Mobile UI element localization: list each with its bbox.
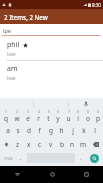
button[interactable]: h <box>56 123 67 137</box>
staticText: c <box>38 140 42 149</box>
button[interactable]: phil <box>0 37 103 60</box>
staticText: l <box>94 126 96 135</box>
staticText: t <box>47 114 50 123</box>
button[interactable]: Voice input <box>69 98 103 109</box>
button[interactable]: . <box>76 153 86 163</box>
staticText: 9 <box>87 110 89 114</box>
staticText: e <box>26 114 30 123</box>
staticText: 8:30 <box>92 2 101 8</box>
button[interactable]: k <box>78 123 89 137</box>
staticText: 5 <box>48 110 50 114</box>
button[interactable]: f <box>34 123 45 137</box>
staticText: b <box>60 140 64 149</box>
staticText: , <box>20 154 22 162</box>
button[interactable]: n <box>67 137 78 151</box>
staticText: g <box>49 126 53 135</box>
button[interactable]: Search <box>90 154 99 163</box>
button[interactable]: Shift <box>0 137 13 151</box>
staticText: z <box>16 140 20 149</box>
staticText: d <box>27 126 31 135</box>
button[interactable]: Close keyboard <box>0 166 35 183</box>
staticText: 8 <box>77 110 79 114</box>
staticText: love <box>7 75 16 81</box>
staticText: o <box>86 114 90 123</box>
button[interactable]: 1 <box>0 109 11 123</box>
button[interactable]: v <box>45 137 56 151</box>
staticText: 2 Items, 2 New <box>4 13 48 21</box>
button[interactable]: 4 <box>33 109 43 123</box>
button[interactable]: 0 <box>93 109 103 123</box>
staticText: h <box>59 126 64 135</box>
staticText: n <box>70 140 75 149</box>
staticText: m <box>80 140 87 149</box>
button[interactable]: a <box>3 123 13 137</box>
staticText: v <box>49 140 53 149</box>
staticText: love <box>7 51 16 57</box>
staticText: x <box>27 140 31 149</box>
staticText: 3 <box>27 110 29 114</box>
button[interactable]: 8 <box>73 109 83 123</box>
button[interactable]: l <box>89 123 100 137</box>
staticText: 0 <box>97 110 99 114</box>
button[interactable]: s <box>13 123 23 137</box>
button[interactable]: 2 Items, 2 New <box>0 9 103 24</box>
button[interactable]: d <box>23 123 34 137</box>
button[interactable]: ?123 <box>0 153 16 163</box>
button[interactable]: 9 <box>83 109 93 123</box>
button[interactable]: 3 <box>22 109 33 123</box>
staticText: 2 <box>16 110 18 114</box>
staticText: j <box>72 126 74 135</box>
staticText: y <box>56 114 60 123</box>
button[interactable]: , <box>16 153 26 163</box>
button[interactable]: b <box>56 137 67 151</box>
staticText: r <box>37 114 40 123</box>
staticText: p <box>96 114 100 123</box>
staticText: u <box>66 114 71 123</box>
staticText: s <box>16 126 20 135</box>
button[interactable]: 2 <box>11 109 22 123</box>
button[interactable]: Home <box>35 166 69 183</box>
button[interactable]: c <box>34 137 45 151</box>
staticText: w <box>14 114 20 123</box>
other: Favorite <box>23 43 28 48</box>
staticText: ?123 <box>4 156 13 161</box>
staticText: k <box>82 126 86 135</box>
button[interactable]: 7 <box>63 109 73 123</box>
staticText: lpe <box>3 27 11 34</box>
staticText: q <box>4 114 8 123</box>
button[interactable]: x <box>23 137 34 151</box>
staticText: 7 <box>68 110 70 114</box>
staticText: 6 <box>57 110 59 114</box>
button[interactable]: Backspace <box>89 137 103 151</box>
staticText: f <box>38 126 41 135</box>
staticText: a <box>6 126 10 135</box>
staticText: phil <box>7 40 20 50</box>
staticText: i <box>77 114 79 123</box>
button[interactable]: am <box>0 61 103 84</box>
staticText: 1 <box>5 110 7 114</box>
button[interactable]: j <box>67 123 78 137</box>
staticText: am <box>7 64 18 74</box>
staticText: 4 <box>38 110 40 114</box>
button[interactable]: g <box>45 123 56 137</box>
button[interactable]: z <box>13 137 23 151</box>
button[interactable]: lpe <box>0 24 103 37</box>
button[interactable]: 6 <box>53 109 63 123</box>
button[interactable]: Recents <box>69 166 103 183</box>
button[interactable]: m <box>78 137 89 151</box>
staticText: . <box>80 154 82 162</box>
button[interactable]: 5 <box>43 109 53 123</box>
